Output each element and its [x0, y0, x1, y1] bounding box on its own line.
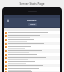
button[interactable]: [4, 45, 60, 49]
button[interactable]: [4, 56, 60, 60]
button[interactable]: [4, 38, 60, 42]
button[interactable]: [4, 42, 60, 45]
button[interactable]: [4, 71, 60, 72]
button[interactable]: Menu: [6, 19, 9, 22]
button[interactable]: [4, 67, 60, 71]
staticText: Today: [30, 23, 36, 26]
staticText: Server Stats Page: [19, 2, 45, 6]
button[interactable]: [4, 34, 60, 38]
button[interactable]: [4, 53, 60, 56]
staticText: Statistics: [27, 19, 37, 22]
button[interactable]: [4, 31, 60, 34]
button[interactable]: [4, 49, 60, 53]
button[interactable]: Today: [28, 23, 37, 26]
button[interactable]: [4, 64, 60, 67]
button[interactable]: [4, 60, 60, 64]
